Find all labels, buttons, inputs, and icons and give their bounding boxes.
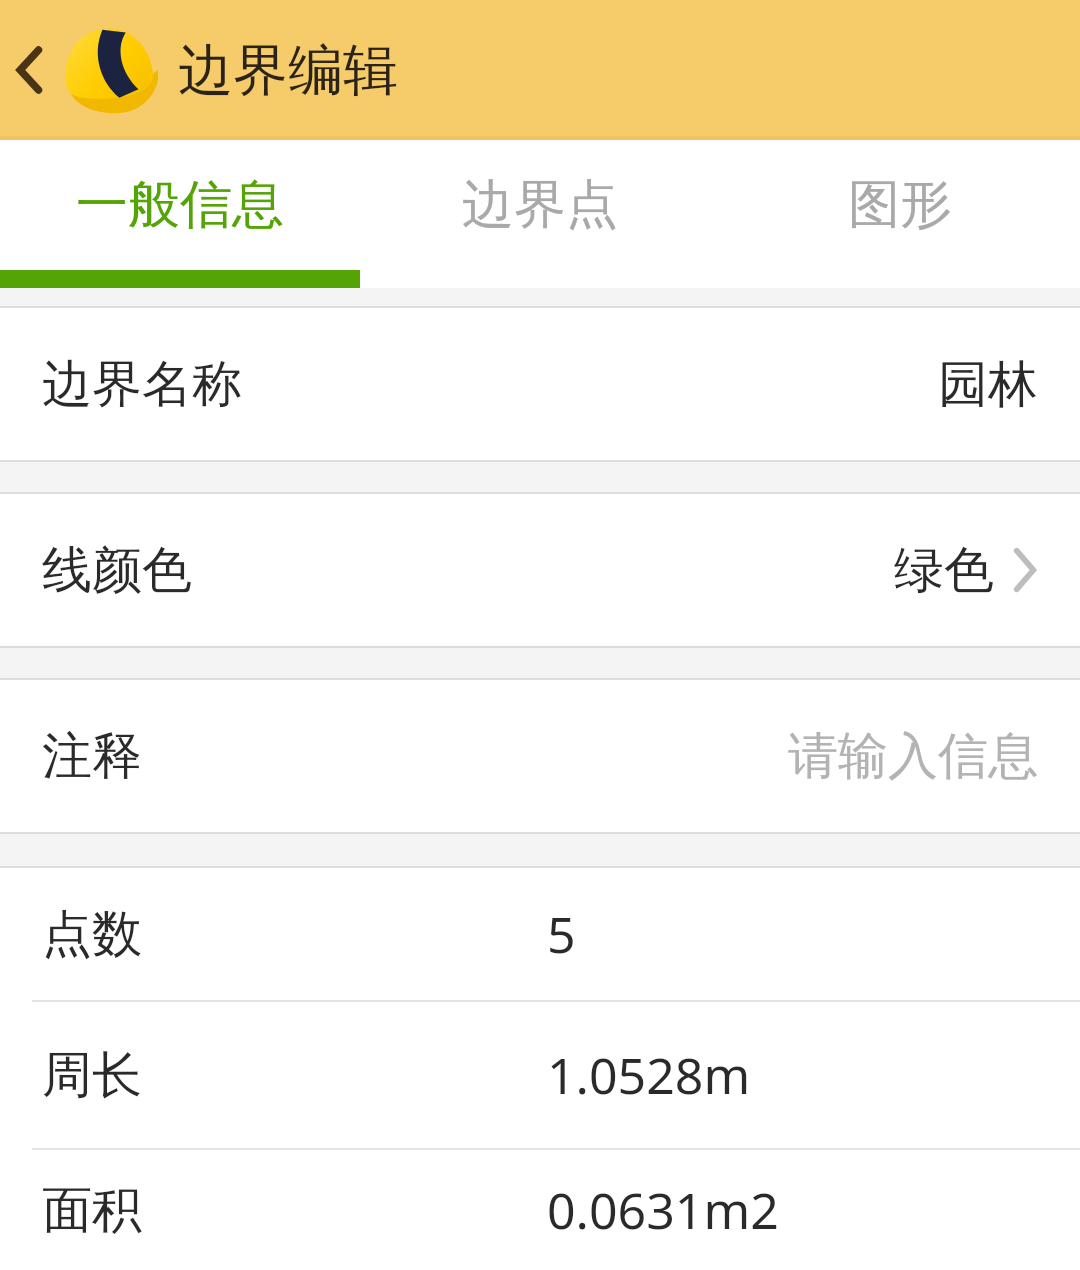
button[interactable]: 注释 xyxy=(0,680,1080,832)
staticText: 周长 xyxy=(42,1044,142,1107)
button[interactable]: Back xyxy=(0,0,58,140)
button[interactable]: 点数 xyxy=(0,868,1080,1000)
staticText: 一般信息 xyxy=(76,172,284,238)
staticText: 绿色 xyxy=(894,539,994,602)
staticText: 边界点 xyxy=(462,172,618,238)
button[interactable]: 线颜色 xyxy=(0,494,1080,646)
button[interactable]: 边界名称 xyxy=(0,308,1080,460)
staticText: 0.0631m2 xyxy=(547,1176,779,1244)
button[interactable]: 边界点 xyxy=(360,140,720,270)
button[interactable]: 图形 xyxy=(720,140,1080,270)
button[interactable]: 面积 xyxy=(0,1150,1080,1270)
staticText: 面积 xyxy=(42,1179,142,1242)
staticText: 点数 xyxy=(42,903,142,966)
staticText: 请输入信息 xyxy=(788,725,1038,788)
staticText: 园林 xyxy=(938,353,1038,416)
staticText: 边界编辑 xyxy=(178,36,398,105)
staticText: 边界名称 xyxy=(42,353,242,416)
staticText: 注释 xyxy=(42,725,142,788)
staticText: 线颜色 xyxy=(42,539,192,602)
staticText: 5 xyxy=(547,900,576,968)
staticText: 1.0528m xyxy=(547,1041,751,1109)
button[interactable]: 周长 xyxy=(0,1002,1080,1148)
button[interactable]: 一般信息 xyxy=(0,140,360,270)
staticText: 图形 xyxy=(848,172,952,238)
